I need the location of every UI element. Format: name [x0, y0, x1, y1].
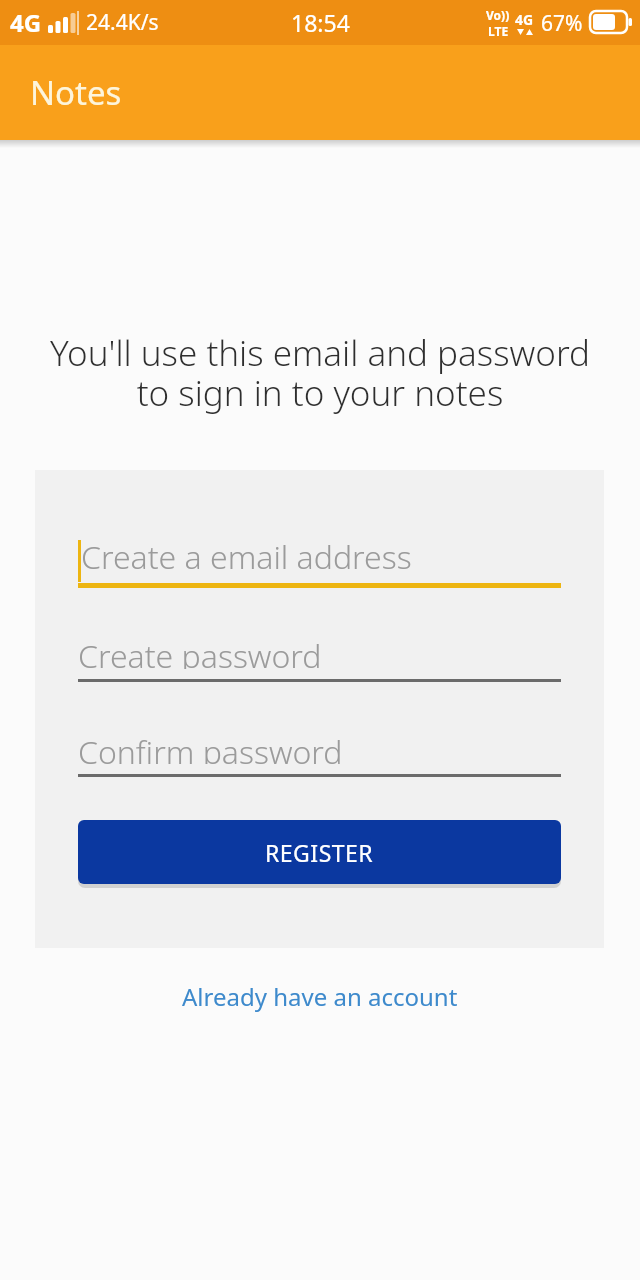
- staticText: 24.4K/s: [86, 8, 159, 37]
- staticText: 4G: [515, 10, 534, 29]
- staticText: Vo)): [486, 7, 510, 23]
- staticText: 4G: [10, 6, 42, 39]
- staticText: REGISTER: [265, 837, 374, 868]
- staticText: Create password: [78, 634, 322, 669]
- staticText: Already have an account: [182, 980, 458, 1013]
- staticText: 67%: [541, 9, 583, 38]
- staticText: Confirm password: [78, 730, 343, 764]
- button[interactable]: Create a email address: [78, 539, 561, 588]
- staticText: 18:54: [291, 7, 350, 38]
- button[interactable]: Confirm password: [78, 740, 561, 777]
- button[interactable]: Create password: [78, 644, 561, 682]
- staticText: Notes: [30, 70, 122, 115]
- staticText: LTE: [488, 23, 509, 39]
- button[interactable]: REGISTER: [78, 820, 561, 884]
- staticText: You'll use this email and password to si…: [0, 329, 640, 417]
- staticText: Create a email address: [81, 535, 412, 579]
- button[interactable]: Already have an account: [182, 980, 458, 1013]
